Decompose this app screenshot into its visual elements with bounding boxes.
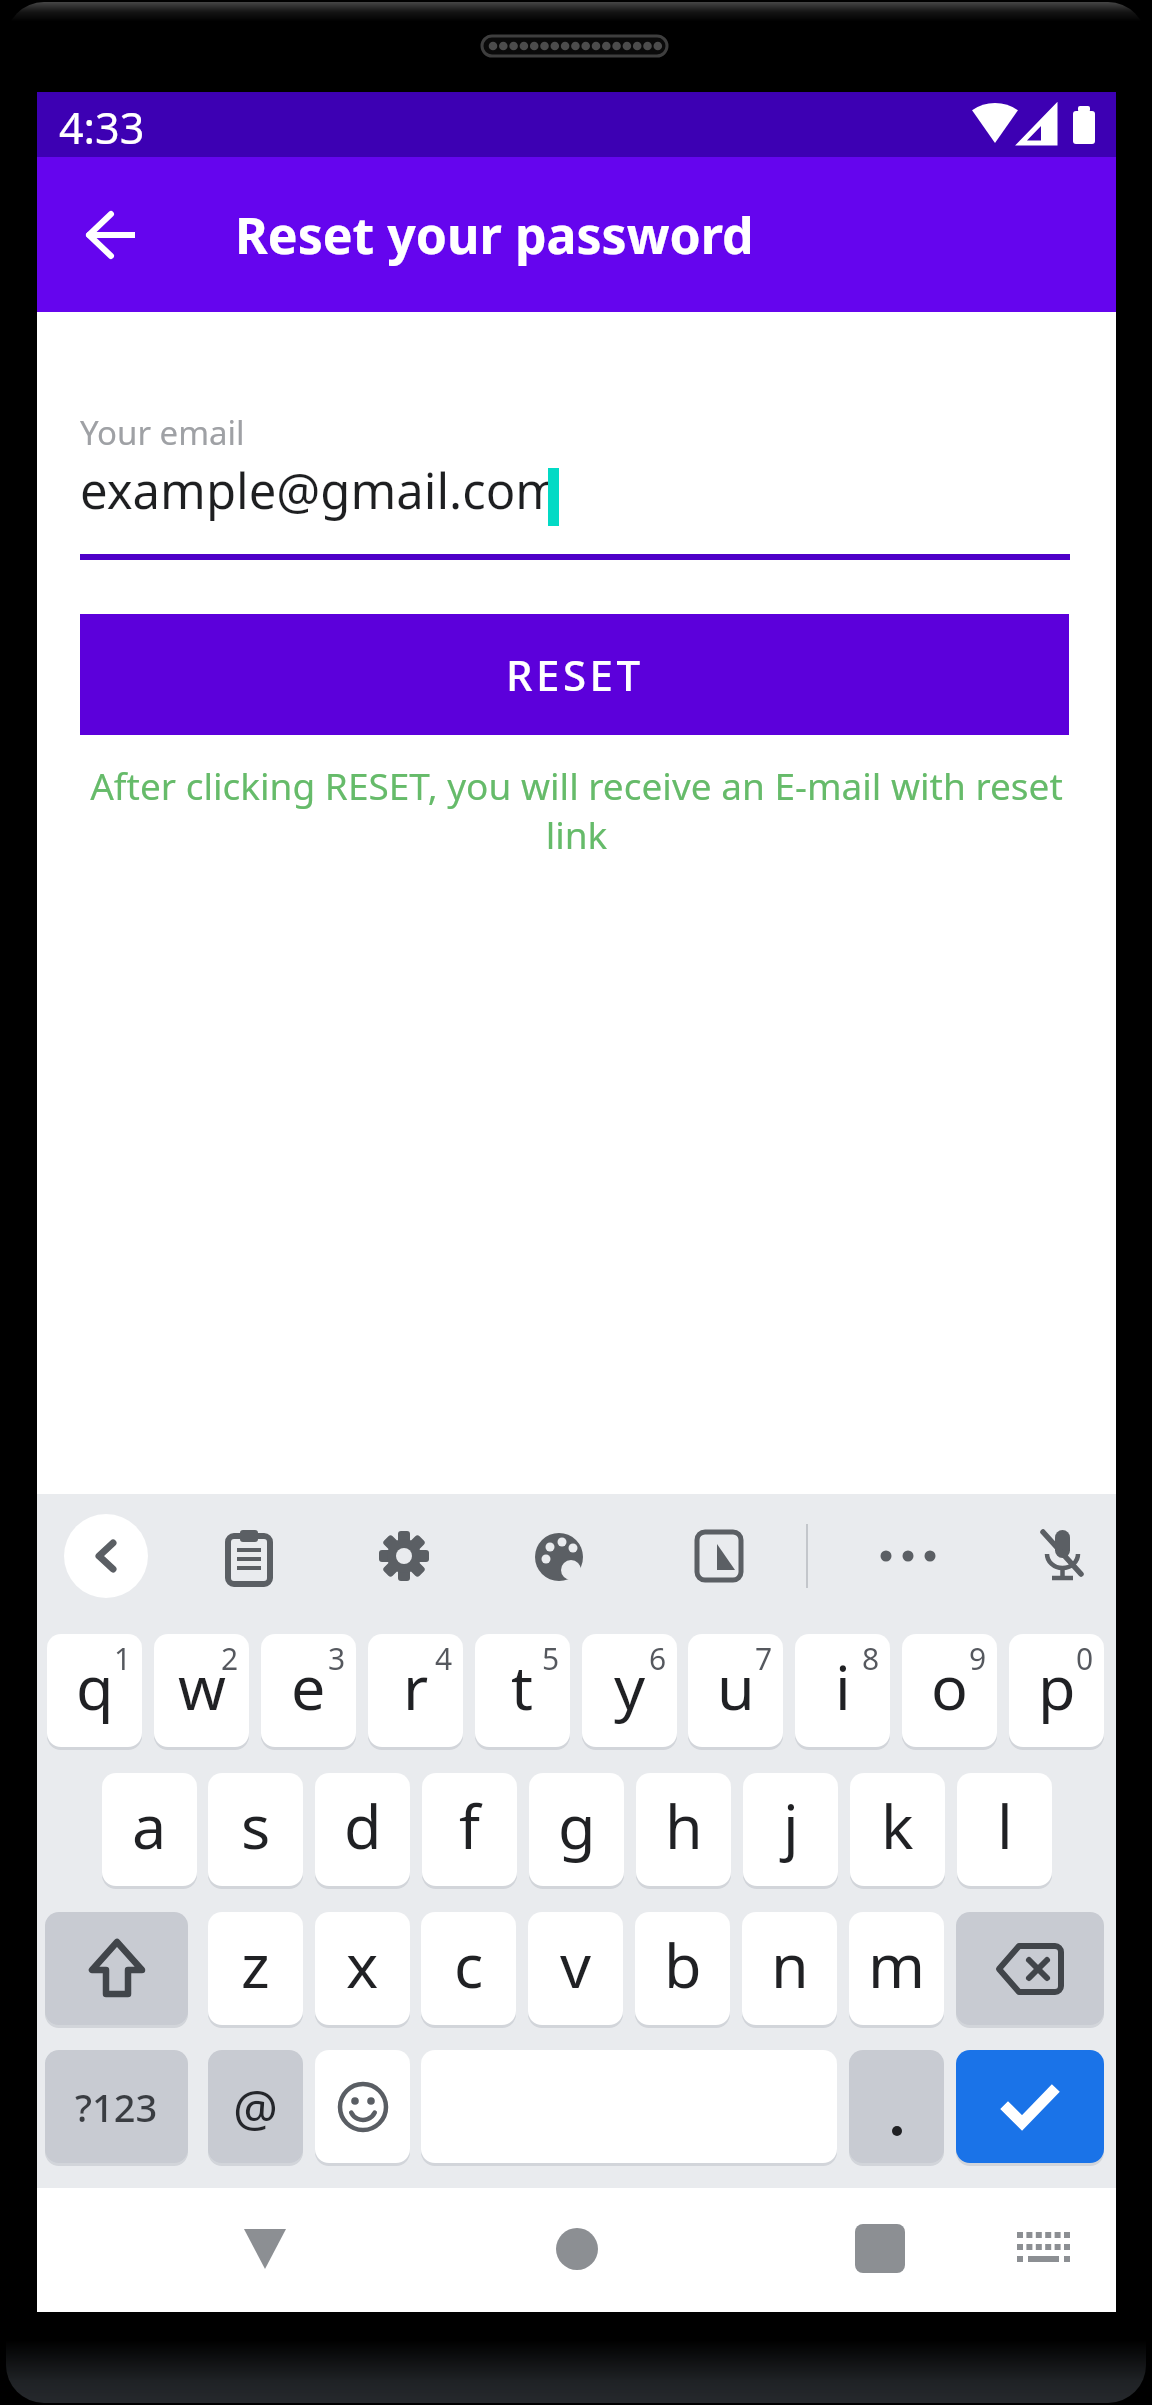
- staticText: RESET: [506, 646, 644, 703]
- button[interactable]: b: [635, 1912, 730, 2025]
- staticText: example@gmail.com: [80, 457, 562, 524]
- button[interactable]: c: [421, 1912, 516, 2025]
- button[interactable]: [243, 2228, 287, 2270]
- staticText: d: [344, 1784, 382, 1867]
- staticText: ?123: [75, 2081, 158, 2133]
- staticText: b: [664, 1923, 702, 2006]
- button[interactable]: o: [902, 1634, 997, 1747]
- staticText: 2: [221, 1638, 239, 1679]
- button[interactable]: RESET: [80, 614, 1069, 735]
- button[interactable]: m: [849, 1912, 944, 2025]
- staticText: Reset your password: [235, 201, 754, 269]
- staticText: i: [835, 1645, 851, 1728]
- button[interactable]: [855, 2224, 905, 2273]
- button[interactable]: l: [957, 1773, 1052, 1886]
- staticText: @: [233, 2073, 278, 2141]
- staticText: 7: [755, 1638, 773, 1679]
- staticText: u: [717, 1645, 755, 1728]
- staticText: v: [560, 1923, 591, 2006]
- button[interactable]: h: [636, 1773, 731, 1886]
- button[interactable]: s: [208, 1773, 303, 1886]
- staticText: j: [783, 1784, 799, 1867]
- staticText: x: [346, 1923, 379, 2006]
- staticText: 8: [862, 1638, 880, 1679]
- button[interactable]: [64, 1514, 148, 1598]
- button[interactable]: x: [315, 1912, 410, 2025]
- button[interactable]: f: [422, 1773, 517, 1886]
- button[interactable]: [45, 1912, 188, 2025]
- staticText: m: [868, 1923, 926, 2006]
- button[interactable]: r: [368, 1634, 463, 1747]
- button[interactable]: j: [743, 1773, 838, 1886]
- button[interactable]: z: [208, 1912, 303, 2025]
- staticText: p: [1038, 1645, 1076, 1728]
- button[interactable]: [225, 1530, 275, 1586]
- button[interactable]: e: [261, 1634, 356, 1747]
- button[interactable]: g: [529, 1773, 624, 1886]
- staticText: t: [511, 1645, 534, 1728]
- staticText: 6: [649, 1638, 667, 1679]
- button[interactable]: [849, 2050, 944, 2163]
- button[interactable]: n: [742, 1912, 837, 2025]
- staticText: k: [881, 1784, 914, 1867]
- staticText: 0: [1076, 1638, 1094, 1679]
- button[interactable]: v: [528, 1912, 623, 2025]
- staticText: s: [241, 1784, 271, 1867]
- staticText: w: [178, 1645, 226, 1728]
- button[interactable]: k: [850, 1773, 945, 1886]
- staticText: e: [291, 1645, 326, 1728]
- staticText: z: [241, 1923, 270, 2006]
- staticText: 4:33: [59, 98, 145, 157]
- staticText: h: [665, 1784, 703, 1867]
- button[interactable]: [1017, 2232, 1070, 2264]
- button[interactable]: @: [208, 2050, 303, 2163]
- staticText: Your email: [80, 410, 245, 455]
- button[interactable]: y: [582, 1634, 677, 1747]
- button[interactable]: [875, 1546, 941, 1566]
- staticText: c: [454, 1923, 484, 2006]
- button[interactable]: ?123: [45, 2050, 188, 2163]
- button[interactable]: a: [102, 1773, 197, 1886]
- button[interactable]: [315, 2050, 410, 2163]
- staticText: a: [132, 1784, 167, 1867]
- button[interactable]: [1035, 1528, 1089, 1586]
- staticText: 5: [542, 1638, 560, 1679]
- staticText: 4: [435, 1638, 453, 1679]
- staticText: 1: [114, 1638, 132, 1679]
- staticText: q: [76, 1645, 114, 1728]
- staticText: l: [997, 1784, 1013, 1867]
- button[interactable]: q: [47, 1634, 142, 1747]
- button[interactable]: [556, 2228, 598, 2270]
- staticText: o: [931, 1645, 968, 1728]
- button[interactable]: w: [154, 1634, 249, 1747]
- staticText: 9: [969, 1638, 987, 1679]
- staticText: y: [614, 1645, 646, 1728]
- button[interactable]: [956, 1912, 1104, 2025]
- button[interactable]: [87, 212, 141, 258]
- staticText: After clicking RESET, you will receive a…: [37, 760, 1116, 860]
- button[interactable]: [695, 1530, 743, 1582]
- button[interactable]: [533, 1532, 585, 1582]
- button[interactable]: example@gmail.com: [80, 452, 1070, 519]
- button[interactable]: d: [315, 1773, 410, 1886]
- staticText: f: [459, 1784, 480, 1867]
- button[interactable]: t: [475, 1634, 570, 1747]
- staticText: r: [403, 1645, 429, 1728]
- button[interactable]: u: [688, 1634, 783, 1747]
- button[interactable]: [956, 2050, 1104, 2163]
- staticText: 3: [328, 1638, 346, 1679]
- button[interactable]: [378, 1530, 430, 1582]
- button[interactable]: i: [795, 1634, 890, 1747]
- button[interactable]: p: [1009, 1634, 1104, 1747]
- staticText: g: [558, 1784, 596, 1867]
- staticText: n: [771, 1923, 809, 2006]
